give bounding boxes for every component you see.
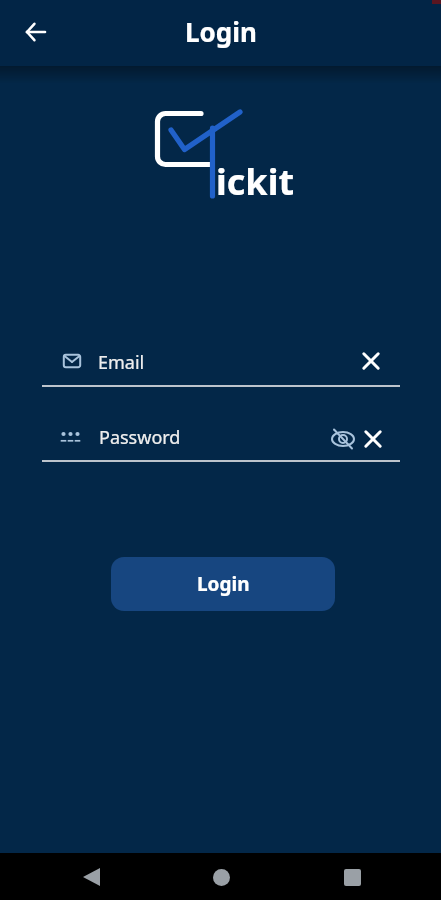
button[interactable] — [19, 15, 53, 49]
button[interactable] — [336, 861, 368, 893]
staticText: Login — [197, 571, 250, 597]
button[interactable]: Password — [42, 413, 400, 461]
button[interactable] — [205, 861, 237, 893]
staticText: Login — [185, 14, 257, 49]
button[interactable] — [75, 861, 107, 893]
button[interactable]: Email — [42, 338, 400, 386]
staticText: Password — [99, 425, 181, 450]
staticText: ickit — [216, 157, 295, 206]
button[interactable] — [362, 352, 380, 370]
staticText: Email — [98, 350, 145, 375]
button[interactable] — [331, 428, 355, 450]
button[interactable]: Login — [111, 557, 335, 611]
button[interactable] — [364, 430, 382, 448]
